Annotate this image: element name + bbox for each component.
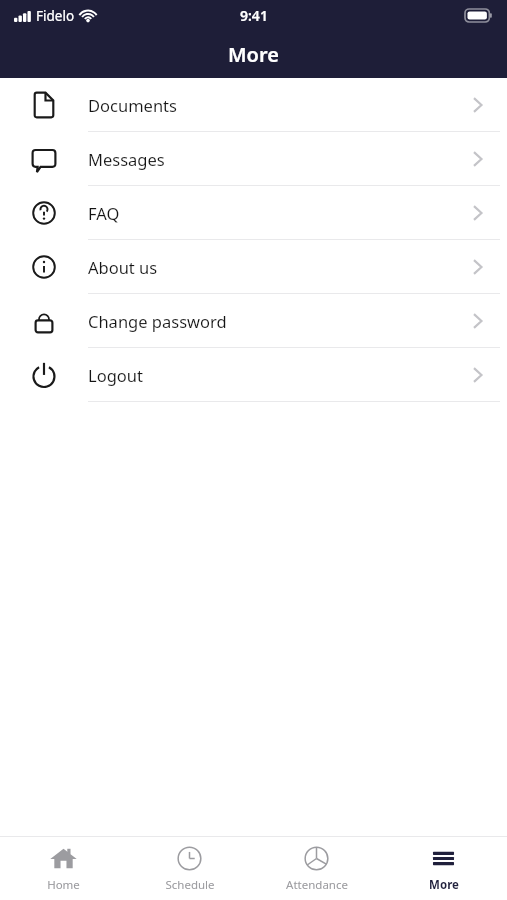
button[interactable]: Home [0,837,126,900]
button[interactable]: Change password [0,294,507,348]
button[interactable]: Schedule [126,837,253,900]
staticText: Messages [88,148,165,170]
button[interactable]: Attendance [253,837,380,900]
staticText: More [228,41,279,68]
staticText: Logout [88,364,143,386]
staticText: About us [88,256,158,278]
staticText: Attendance [286,877,348,893]
button[interactable]: About us [0,240,507,294]
staticText: 9:41 [240,6,268,25]
button[interactable]: Documents [0,78,507,132]
staticText: Documents [88,94,177,116]
button[interactable]: FAQ [0,186,507,240]
staticText: FAQ [88,202,120,224]
button[interactable]: Logout [0,348,507,402]
button[interactable]: More [380,837,507,900]
staticText: More [429,877,459,893]
staticText: Change password [88,310,227,332]
button[interactable]: Messages [0,132,507,186]
staticText: Schedule [165,877,215,893]
staticText: Home [47,877,80,893]
staticText: Fidelo [36,7,75,25]
